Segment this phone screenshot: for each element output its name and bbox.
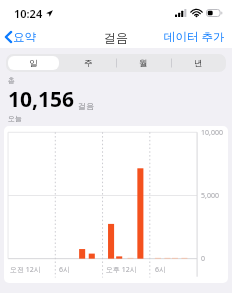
button[interactable]: 년 (171, 54, 226, 72)
staticText: 걸음 (78, 101, 94, 111)
staticText: 6시 (155, 265, 167, 275)
staticText: 요약 (13, 30, 36, 44)
staticText: 10:24 (14, 6, 43, 21)
staticText: 6시 (59, 265, 71, 275)
staticText: 월 (139, 58, 148, 69)
staticText: 10,156 (8, 85, 75, 114)
staticText: 주 (84, 58, 93, 69)
button[interactable]: 월 (116, 54, 171, 72)
staticText: 오후 12시 (106, 265, 137, 275)
staticText: 걸음 (104, 30, 128, 45)
button[interactable]: 주 (61, 54, 116, 72)
staticText: 오전 12시 (10, 265, 41, 275)
button[interactable]: 요약 (0, 26, 42, 48)
button[interactable]: 일 (6, 54, 61, 72)
staticText: 10,000 (201, 128, 223, 138)
staticText: 5,000 (201, 191, 219, 201)
staticText: 년 (194, 58, 203, 69)
button[interactable]: 데이터 추가 (157, 26, 232, 48)
staticText: 0 (201, 254, 206, 264)
staticText: 일 (29, 58, 38, 69)
staticText: 데이터 추가 (164, 29, 225, 45)
staticText: 오늘 (8, 114, 22, 123)
staticText: 총 (8, 76, 15, 85)
